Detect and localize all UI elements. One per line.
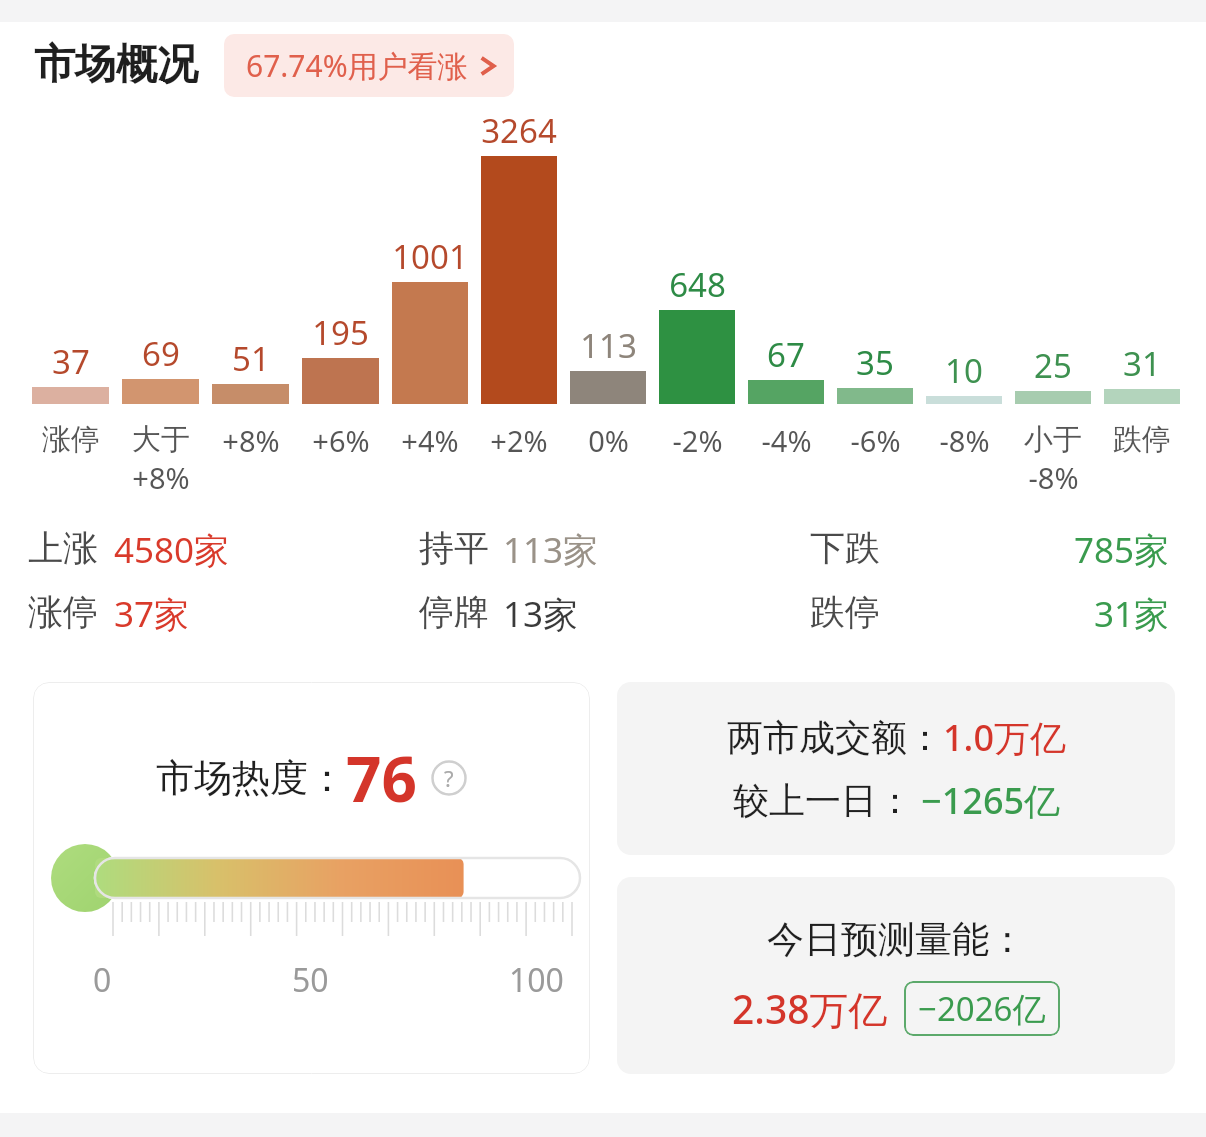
staticText: 2.38万亿 xyxy=(732,982,888,1035)
staticText: 50 xyxy=(292,958,329,1002)
staticText: -6% xyxy=(850,421,901,460)
staticText: 0 xyxy=(93,958,112,1002)
staticText: 1.0万亿 xyxy=(943,713,1066,762)
staticText: 76 xyxy=(346,736,417,820)
staticText: 69 xyxy=(142,331,180,376)
staticText: 较上一日： xyxy=(733,778,913,823)
staticText: +8% xyxy=(132,458,190,497)
staticText: +2% xyxy=(490,421,548,460)
staticText: 小于 xyxy=(1024,421,1082,458)
staticText: 67.74%用户看涨 xyxy=(246,45,468,86)
staticText: 37家 xyxy=(114,590,190,638)
staticText: 两市成交额： xyxy=(727,715,943,760)
staticText: -8% xyxy=(1028,458,1079,497)
staticText: 跌停 xyxy=(810,590,880,634)
staticText: 113 xyxy=(580,323,637,368)
staticText: -8% xyxy=(939,421,990,460)
staticText: 1001 xyxy=(392,234,468,279)
staticText: +6% xyxy=(312,421,370,460)
staticText: 停牌 xyxy=(419,590,489,634)
staticText: 跌停 xyxy=(1113,421,1171,458)
staticText: −2026亿 xyxy=(918,986,1046,1031)
staticText: 涨停 xyxy=(28,590,98,634)
staticText: 51 xyxy=(232,336,270,381)
staticText: 市场概况 xyxy=(34,39,198,91)
staticText: 67 xyxy=(767,332,805,377)
staticText: +8% xyxy=(222,421,280,460)
staticText: 上涨 xyxy=(28,526,98,570)
staticText: 195 xyxy=(312,310,369,355)
staticText: 10 xyxy=(945,348,983,393)
button[interactable]: 67.74%用户看涨 xyxy=(224,34,514,97)
staticText: 下跌 xyxy=(810,526,880,570)
staticText: 4580家 xyxy=(114,526,230,574)
staticText: 大于 xyxy=(132,421,190,458)
staticText: 785家 xyxy=(1074,526,1170,574)
staticText: 31家 xyxy=(1094,590,1170,638)
button[interactable]: 说明 xyxy=(431,760,467,796)
staticText: −1265亿 xyxy=(921,776,1061,825)
staticText: 113家 xyxy=(503,526,599,574)
staticText: 13家 xyxy=(503,590,579,638)
staticText: 涨停 xyxy=(42,421,100,458)
staticText: 持平 xyxy=(419,526,489,570)
staticText: 37 xyxy=(52,339,90,384)
staticText: 25 xyxy=(1034,343,1072,388)
staticText: -2% xyxy=(672,421,723,460)
staticText: -4% xyxy=(761,421,812,460)
button[interactable]: 市场热度： xyxy=(33,682,590,1074)
staticText: 3264 xyxy=(481,108,557,153)
staticText: 100 xyxy=(509,958,564,1002)
staticText: 31 xyxy=(1123,341,1161,386)
staticText: +4% xyxy=(401,421,459,460)
staticText: ? xyxy=(444,763,454,793)
staticText: 今日预测量能： xyxy=(767,916,1026,963)
staticText: 648 xyxy=(669,262,726,307)
button[interactable]: 今日预测量能： xyxy=(617,877,1175,1074)
staticText: 市场热度： xyxy=(156,754,346,802)
staticText: 0% xyxy=(588,421,629,460)
staticText: 35 xyxy=(856,340,894,385)
button[interactable]: 两市成交额： xyxy=(617,682,1175,855)
